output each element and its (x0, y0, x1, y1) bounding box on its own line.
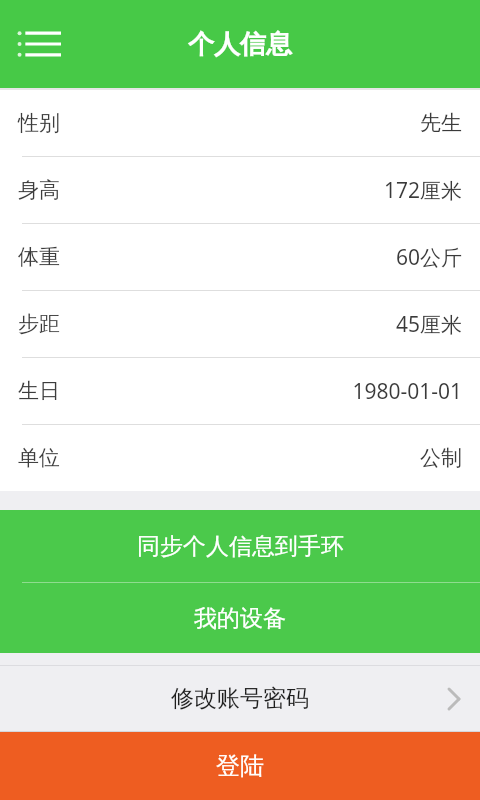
staticText: 性别 (18, 110, 60, 136)
staticText: 个人信息 (188, 28, 292, 61)
button[interactable]: 修改账号密码 (0, 666, 480, 731)
staticText: 登陆 (216, 751, 264, 781)
staticText: 172厘米 (383, 176, 462, 205)
staticText: 身高 (18, 177, 60, 203)
button[interactable]: 同步个人信息到手环 (0, 510, 480, 582)
button[interactable]: 体重 (0, 224, 480, 291)
button[interactable]: 我的设备 (0, 583, 480, 653)
staticText: 60公斤 (395, 243, 462, 272)
staticText: 同步个人信息到手环 (137, 532, 344, 561)
button[interactable]: Menu (10, 15, 68, 73)
button[interactable]: 性别 (0, 90, 480, 157)
button[interactable]: 登陆 (0, 732, 480, 800)
staticText: 我的设备 (194, 604, 286, 633)
staticText: 生日 (18, 378, 60, 404)
staticText: 公制 (420, 445, 462, 471)
staticText: 先生 (420, 110, 462, 136)
staticText: 单位 (18, 445, 60, 471)
button[interactable]: 身高 (0, 157, 480, 224)
button[interactable]: 单位 (0, 425, 480, 491)
staticText: 45厘米 (395, 310, 462, 339)
button[interactable]: 步距 (0, 291, 480, 358)
staticText: 步距 (18, 311, 60, 337)
staticText: 1980-01-01 (352, 377, 462, 406)
staticText: 修改账号密码 (171, 684, 309, 713)
staticText: 体重 (18, 244, 60, 270)
button[interactable]: 生日 (0, 358, 480, 425)
